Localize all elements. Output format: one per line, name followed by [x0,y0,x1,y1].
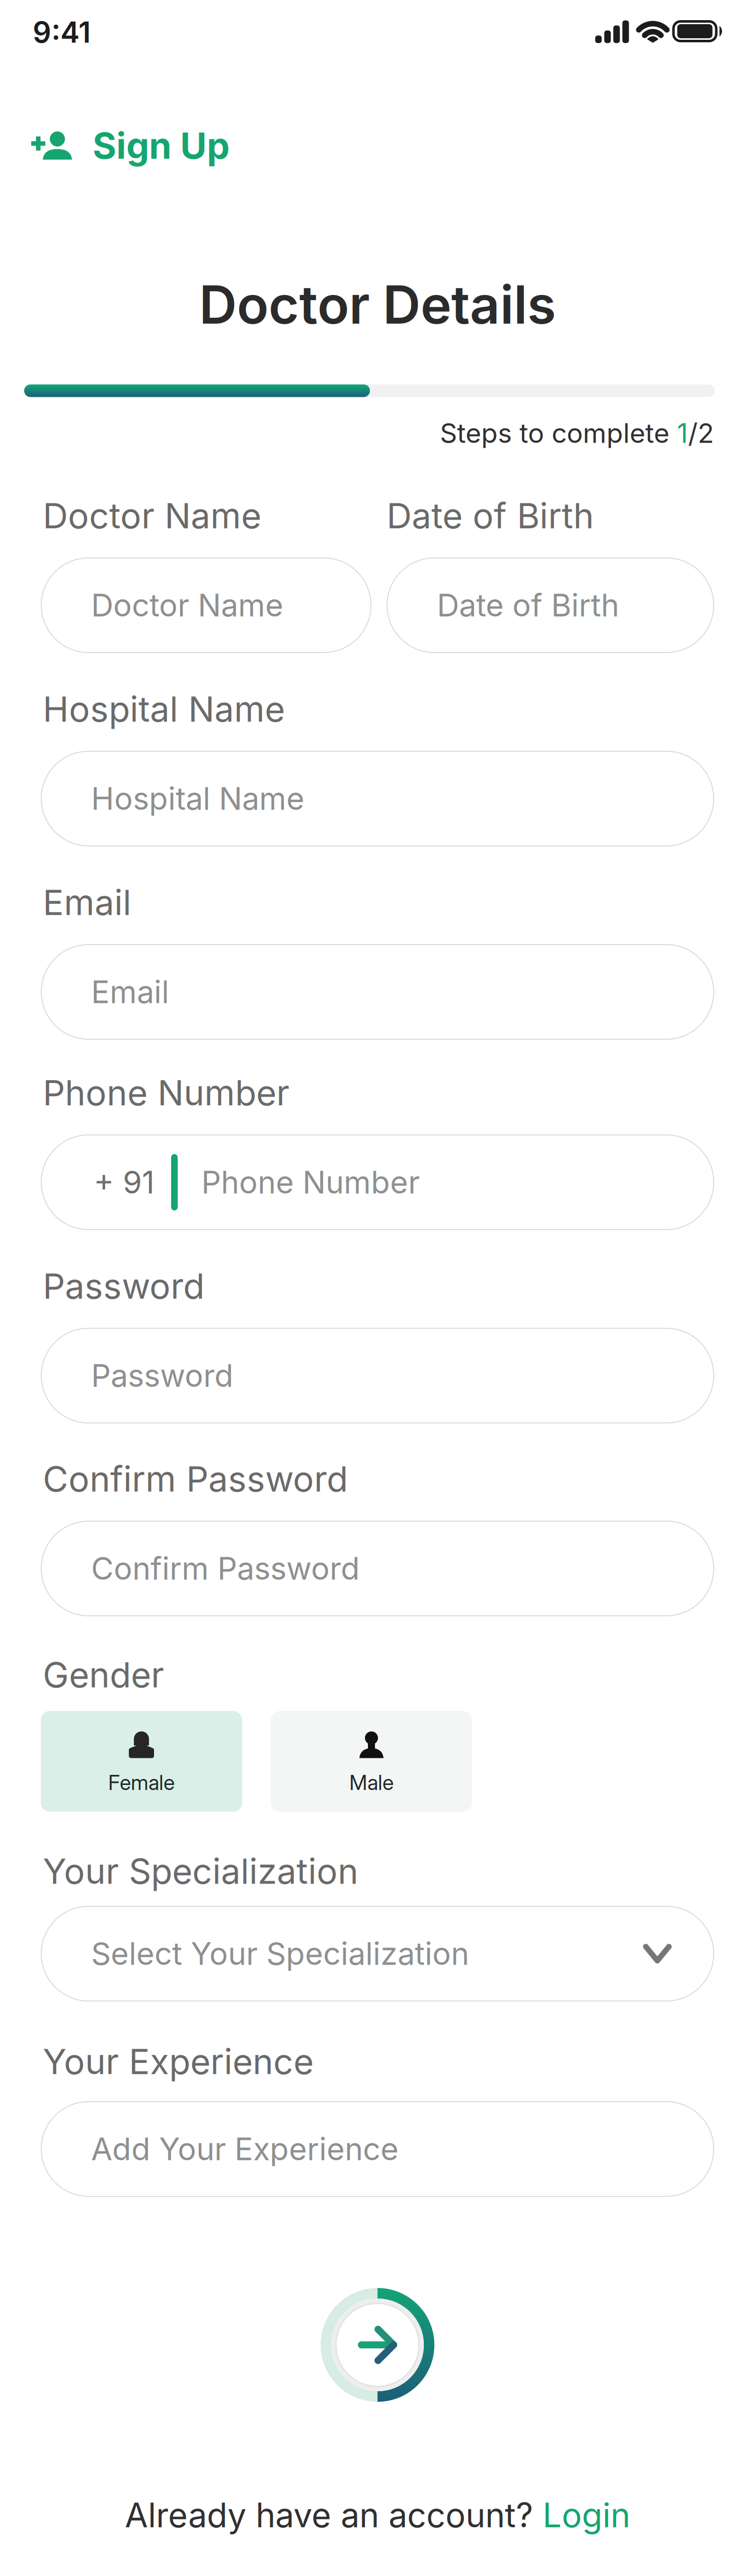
staticText: Add Your Experience [91,2131,399,2167]
button[interactable]: Add Your Experience [41,2101,714,2197]
staticText: Female [108,1770,175,1795]
staticText: Steps to complete [440,417,677,449]
staticText: 9:41 [33,15,91,49]
staticText: Gender [43,1654,164,1695]
staticText: Hospital Name [91,780,305,817]
staticText: Your Specialization [43,1850,358,1892]
staticText: Already have an account? [125,2495,543,2535]
staticText: Doctor Details [199,274,556,336]
staticText: Login [543,2495,630,2535]
button[interactable]: Next [317,2284,438,2405]
staticText: Date of Birth [437,587,619,623]
button[interactable]: Doctor Name [41,557,371,653]
staticText: Confirm Password [43,1458,348,1499]
button[interactable]: Hospital Name [41,751,714,846]
staticText: Email [91,974,169,1010]
button[interactable]: Login [543,2495,630,2535]
button[interactable]: Date of Birth [387,557,714,653]
staticText: Password [43,1265,204,1307]
staticText: /2 [688,417,714,449]
staticText: Male [349,1770,394,1795]
staticText: Your Experience [43,2041,314,2082]
staticText: 1 [677,417,688,449]
staticText: Confirm Password [91,1550,360,1587]
button[interactable]: Password [41,1328,714,1423]
button[interactable]: Email [41,944,714,1040]
staticText: + 91 [94,1164,155,1200]
staticText: Phone Number [201,1164,420,1200]
button[interactable]: Male [271,1711,472,1812]
staticText: Doctor Name [43,495,261,536]
staticText: Select Your Specialization [91,1935,469,1972]
staticText: Phone Number [43,1072,289,1113]
staticText: Password [91,1357,234,1394]
button[interactable]: Select Your Specialization [41,1906,714,2001]
staticText: Doctor Name [91,587,283,623]
staticText: Hospital Name [43,688,285,730]
staticText: Date of Birth [387,495,594,536]
button[interactable]: Female [41,1711,242,1812]
button[interactable]: Confirm Password [41,1521,714,1616]
staticText: Email [43,882,131,923]
button[interactable]: + 91 [41,1134,714,1230]
staticText: Sign Up [93,124,230,167]
